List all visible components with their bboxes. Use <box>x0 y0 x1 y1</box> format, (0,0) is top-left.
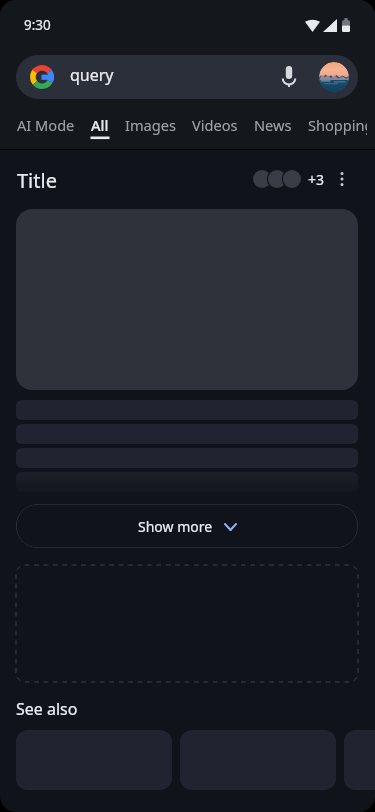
staticText: Shopping <box>308 115 367 135</box>
button[interactable]: Images <box>117 102 184 152</box>
button[interactable]: News <box>246 102 300 152</box>
staticText: query <box>70 64 114 86</box>
button[interactable]: Account <box>319 62 349 92</box>
staticText: Show more <box>138 517 213 536</box>
staticText: Title <box>17 167 57 194</box>
button[interactable]: AI Mode <box>9 102 83 152</box>
staticText: 9:30 <box>24 16 51 34</box>
staticText: Images <box>125 115 176 135</box>
button[interactable] <box>344 730 375 790</box>
button[interactable]: Show more <box>16 504 358 548</box>
staticText: All <box>91 115 109 135</box>
staticText: News <box>254 115 292 135</box>
button[interactable]: Participants <box>252 169 306 189</box>
button[interactable]: query <box>16 55 358 99</box>
button[interactable]: More options <box>330 167 354 191</box>
button[interactable]: Shopping <box>300 102 375 152</box>
staticText: +3 <box>308 170 325 189</box>
button[interactable]: Voice search <box>273 60 305 92</box>
button[interactable]: All <box>83 102 117 152</box>
staticText: Videos <box>192 115 238 135</box>
button[interactable]: Videos <box>184 102 246 152</box>
staticText: See also <box>16 698 78 720</box>
staticText: AI Mode <box>17 115 75 135</box>
